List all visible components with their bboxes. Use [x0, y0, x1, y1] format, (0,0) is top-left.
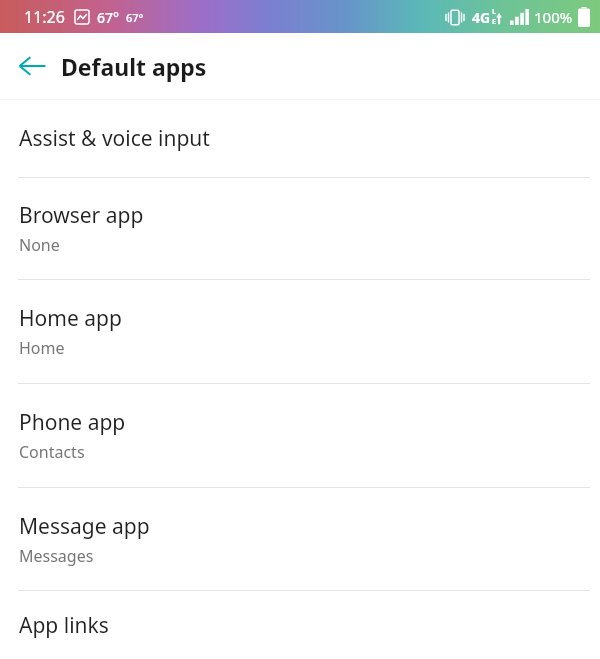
staticText: 67° — [97, 8, 119, 27]
staticText: Contacts — [19, 441, 85, 463]
staticText: App links — [19, 611, 109, 640]
staticText: 100% — [534, 7, 573, 27]
staticText: Assist & voice input — [19, 124, 210, 153]
button[interactable]: Message app — [0, 488, 600, 590]
staticText: Message app — [19, 512, 150, 541]
staticText: 4G — [472, 8, 491, 27]
button[interactable]: Phone app — [0, 384, 600, 487]
staticText: Messages — [19, 545, 94, 567]
button[interactable]: Assist & voice input — [0, 100, 600, 177]
staticText: Home — [19, 337, 65, 359]
staticText: 11:26 — [24, 6, 65, 28]
staticText: L — [492, 7, 496, 17]
staticText: 67° — [126, 10, 144, 25]
staticText: Default apps — [61, 51, 207, 82]
staticText: Phone app — [19, 408, 126, 437]
staticText: Home app — [19, 304, 122, 333]
button[interactable]: Navigate up — [8, 42, 56, 90]
staticText: Browser app — [19, 201, 144, 230]
staticText: E — [492, 17, 496, 27]
button[interactable]: App links — [0, 591, 600, 659]
staticText: None — [19, 234, 60, 256]
button[interactable]: Browser app — [0, 178, 600, 279]
button[interactable]: Home app — [0, 280, 600, 383]
